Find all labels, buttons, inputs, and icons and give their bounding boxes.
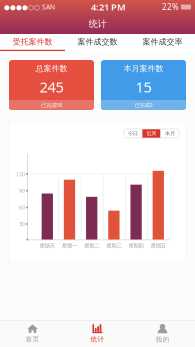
staticText: 星期三 — [106, 242, 121, 249]
staticText: 星期一 — [62, 242, 77, 249]
button[interactable]: 首页 — [0, 320, 65, 347]
button[interactable]: 我的 — [130, 320, 195, 347]
button[interactable]: 总案件数 — [9, 60, 94, 110]
staticText: 60 — [19, 204, 25, 211]
staticText: ●●●●○○ SAN — [4, 3, 55, 11]
staticText: 总案件数 — [35, 64, 67, 73]
staticText: 4:21 PM — [91, 1, 126, 13]
staticText: 首页 — [25, 335, 39, 343]
staticText: 案件成交率 — [142, 37, 182, 47]
staticText: 案件成交数 — [77, 37, 117, 47]
button[interactable]: 案件成交数 — [65, 34, 130, 51]
staticText: 近周 — [146, 130, 156, 137]
staticText: 今日 — [128, 130, 138, 137]
staticText: 已完成0 — [134, 101, 152, 109]
staticText: 本月案件数 — [123, 64, 163, 73]
button[interactable]: 案件成交率 — [130, 34, 195, 51]
staticText: 120 — [16, 171, 25, 178]
staticText: 受托案件数 — [12, 37, 52, 47]
staticText: 245 — [39, 77, 63, 96]
button[interactable]: 今日 — [124, 129, 142, 138]
staticText: 星期天 — [40, 242, 55, 249]
button[interactable]: 本月案件数 — [101, 60, 186, 110]
staticText: 已完成58 — [41, 101, 62, 109]
staticText: 统计 — [88, 18, 106, 30]
staticText: 星期五 — [151, 242, 166, 249]
button[interactable]: 近周 — [142, 129, 160, 138]
staticText: 15 — [135, 77, 151, 96]
staticText: 星期四 — [129, 242, 144, 249]
staticText: 22% — [162, 2, 179, 12]
staticText: 我的 — [155, 335, 169, 344]
button[interactable]: 本月 — [161, 129, 179, 138]
staticText: 本月 — [165, 130, 175, 137]
button[interactable]: 受托案件数 — [0, 34, 65, 51]
staticText: 统计 — [90, 335, 104, 343]
staticText: 30 — [19, 220, 25, 228]
staticText: 90 — [19, 187, 25, 194]
staticText: 星期二 — [84, 242, 99, 249]
button[interactable]: 统计 — [65, 320, 130, 347]
